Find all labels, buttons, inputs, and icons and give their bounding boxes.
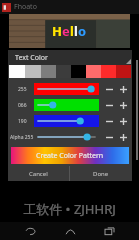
button[interactable]: Increase Alpha 255 [116,130,130,144]
staticText: 066 [18,102,27,109]
button[interactable]: 190 slider [34,115,99,127]
button[interactable]: Decrease 255 [102,82,116,96]
staticText: o [78,22,87,40]
button[interactable]: Decrease 066 [102,98,116,112]
staticText: Text Color [15,53,48,63]
button[interactable]: Decrease 190 [102,114,116,128]
staticText: e [62,22,70,40]
button[interactable]: Recents [100,222,118,240]
button[interactable]: 255 slider [34,83,99,95]
staticText: H [52,22,62,40]
button[interactable]: Increase 066 [116,98,130,112]
staticText: 255 [18,86,27,93]
button[interactable]: Create Color Pattern [11,147,129,164]
staticText: Done [93,170,109,178]
button[interactable]: Home [61,222,79,240]
button[interactable]: Back [21,222,39,240]
staticText: 190 [18,118,27,125]
staticText: l [74,22,78,40]
staticText: Alpha 255 [10,134,34,141]
other: App icon [2,3,11,12]
staticText: l [70,22,74,40]
staticText: Create Color Pattern [36,151,104,161]
button[interactable]: 066 slider [34,99,99,111]
button[interactable]: Increase 255 [116,82,130,96]
button[interactable]: Alpha 255 slider [34,131,99,143]
button[interactable]: Decrease Alpha 255 [102,130,116,144]
button[interactable]: Increase 190 [116,114,130,128]
staticText: Fhoato [14,2,37,12]
button[interactable]: Cancel [8,166,69,181]
staticText: Cancel [29,170,48,178]
staticText: 工软件 • ZJHHRJ [0,200,139,218]
button[interactable]: Done [70,166,132,181]
